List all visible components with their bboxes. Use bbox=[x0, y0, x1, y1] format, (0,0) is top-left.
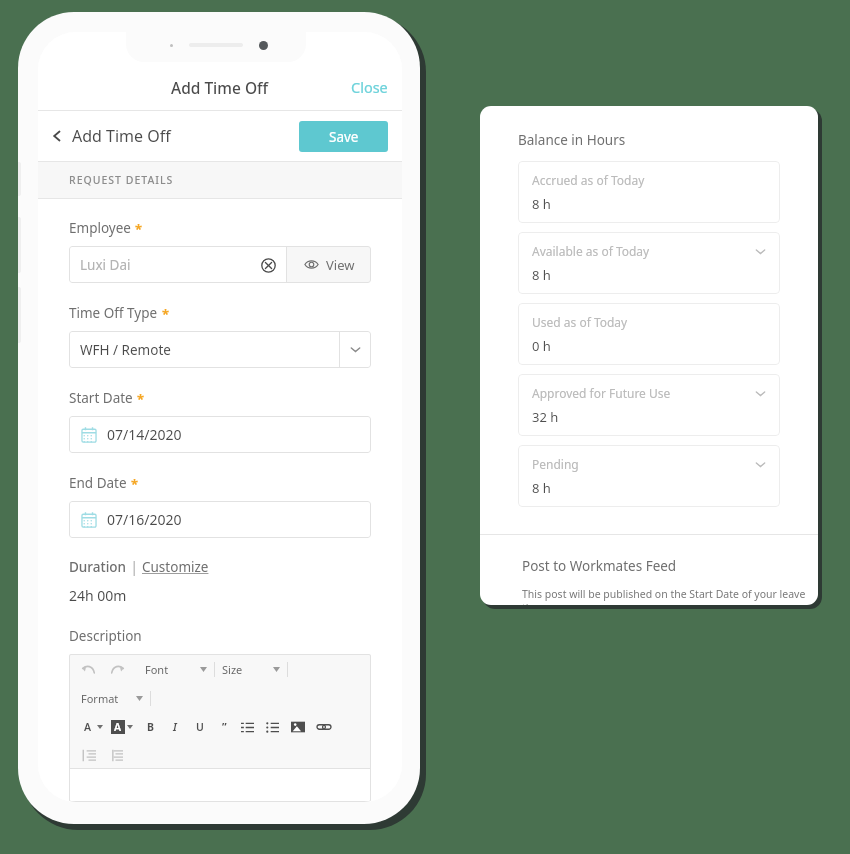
button[interactable]: Back bbox=[38, 119, 179, 153]
button[interactable]: Outdent bbox=[83, 749, 96, 762]
staticText: Close bbox=[351, 77, 388, 97]
staticText: Add Time Off bbox=[72, 125, 171, 147]
staticText: REQUEST DETAILS bbox=[69, 173, 174, 187]
staticText: B bbox=[147, 720, 154, 734]
staticText: View bbox=[326, 256, 355, 274]
button[interactable]: Save bbox=[299, 121, 388, 152]
staticText: Approved for Future Use bbox=[532, 385, 671, 401]
staticText: Employee bbox=[69, 219, 131, 237]
button[interactable]: Available as of Today bbox=[518, 232, 780, 294]
button[interactable]: A bbox=[111, 720, 133, 734]
staticText: 24h 00m bbox=[69, 586, 127, 605]
staticText: 8 h bbox=[532, 266, 551, 284]
staticText: Save bbox=[329, 128, 359, 146]
staticText: 07/16/2020 bbox=[107, 510, 182, 529]
staticText: WFH / Remote bbox=[80, 341, 339, 359]
button[interactable]: Redo bbox=[111, 662, 125, 676]
staticText: Accrued as of Today bbox=[532, 172, 645, 188]
other: Back bbox=[50, 129, 64, 143]
staticText: ” bbox=[222, 720, 227, 734]
staticText: This post will be published on the Start… bbox=[522, 587, 818, 605]
staticText: * bbox=[135, 220, 143, 238]
staticText: Balance in Hours bbox=[518, 131, 626, 149]
other: Clear bbox=[261, 258, 276, 273]
button[interactable]: WFH / Remote bbox=[69, 331, 371, 368]
staticText: * bbox=[137, 390, 145, 408]
staticText: Add Time Off bbox=[171, 77, 269, 98]
button[interactable]: ” bbox=[217, 720, 231, 734]
staticText: | bbox=[127, 558, 142, 576]
staticText: Size bbox=[222, 662, 273, 677]
button[interactable]: Numbered list bbox=[241, 721, 254, 734]
button[interactable]: A bbox=[81, 720, 103, 734]
staticText: * bbox=[131, 475, 139, 493]
staticText: Duration bbox=[69, 558, 127, 576]
staticText: Post to Workmates Feed bbox=[522, 557, 677, 575]
button[interactable]: Undo bbox=[81, 662, 95, 676]
button[interactable]: 07/16/2020 bbox=[69, 501, 371, 538]
button[interactable]: Used as of Today bbox=[518, 303, 780, 365]
staticText: 07/14/2020 bbox=[107, 425, 182, 444]
staticText: I bbox=[173, 720, 177, 734]
button[interactable]: Insert image bbox=[291, 720, 305, 734]
button[interactable]: Bulleted list bbox=[266, 721, 279, 734]
staticText: End Date bbox=[69, 474, 127, 492]
button[interactable]: Format bbox=[81, 691, 143, 706]
button[interactable]: 07/14/2020 bbox=[69, 416, 371, 453]
button[interactable]: Approved for Future Use bbox=[518, 374, 780, 436]
staticText: 8 h bbox=[532, 479, 551, 497]
staticText: Time Off Type bbox=[69, 304, 158, 322]
staticText: Description bbox=[69, 627, 142, 645]
button[interactable] bbox=[69, 769, 371, 802]
staticText: Used as of Today bbox=[532, 314, 628, 330]
staticText: Format bbox=[81, 691, 136, 706]
staticText: A bbox=[114, 720, 122, 734]
button[interactable]: Pending bbox=[518, 445, 780, 507]
button[interactable]: Indent bbox=[110, 749, 123, 762]
staticText: Pending bbox=[532, 456, 579, 472]
button[interactable]: Customize bbox=[142, 558, 209, 576]
staticText: 0 h bbox=[532, 337, 551, 355]
staticText: Luxi Dai bbox=[80, 256, 261, 274]
button[interactable]: Font bbox=[145, 662, 207, 677]
staticText: Font bbox=[145, 662, 200, 677]
staticText: A bbox=[84, 720, 92, 734]
button[interactable]: Size bbox=[222, 662, 280, 677]
button[interactable]: Insert link bbox=[317, 720, 331, 734]
staticText: Customize bbox=[142, 558, 209, 576]
button[interactable]: Accrued as of Today bbox=[518, 161, 780, 223]
staticText: Available as of Today bbox=[532, 243, 650, 259]
button[interactable]: B bbox=[143, 720, 157, 734]
staticText: * bbox=[162, 305, 170, 323]
button[interactable]: Close bbox=[343, 71, 396, 103]
staticText: 8 h bbox=[532, 195, 551, 213]
staticText: 32 h bbox=[532, 408, 559, 426]
button[interactable]: U bbox=[193, 720, 207, 734]
button[interactable]: View bbox=[287, 246, 371, 283]
button[interactable]: Luxi Dai bbox=[69, 246, 286, 283]
staticText: U bbox=[196, 720, 204, 734]
staticText: Start Date bbox=[69, 389, 133, 407]
button[interactable]: I bbox=[168, 720, 182, 734]
